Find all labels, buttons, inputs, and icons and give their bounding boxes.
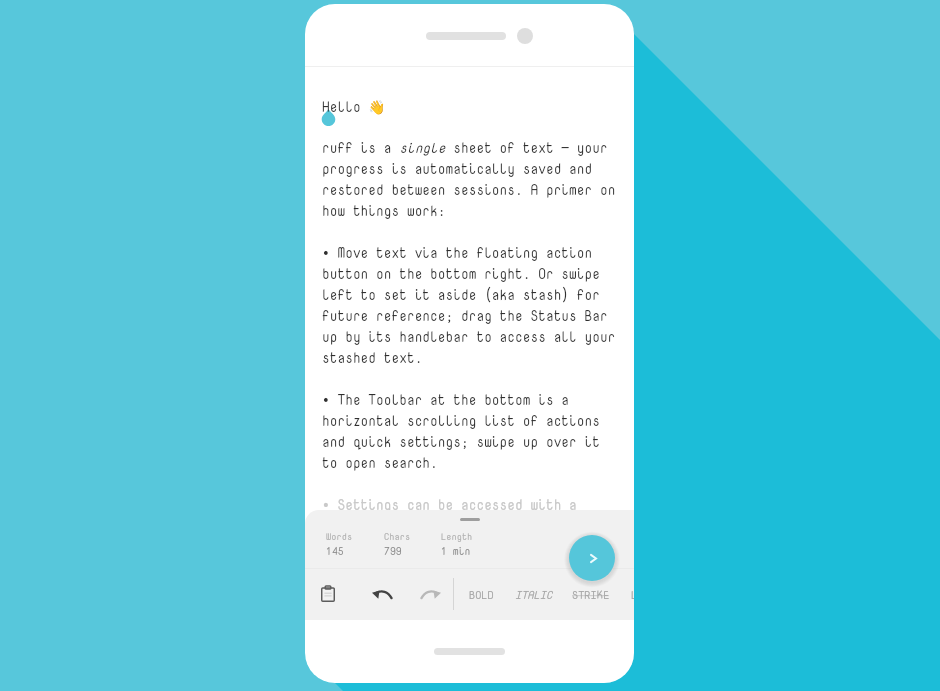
button[interactable]: STRIKE xyxy=(572,577,610,612)
button[interactable]: Redo xyxy=(413,577,447,611)
button[interactable]: Paste xyxy=(311,577,345,611)
staticText: 799 xyxy=(384,544,402,559)
staticText: 145 xyxy=(326,544,344,559)
button[interactable]: L xyxy=(631,577,634,612)
staticText: Words xyxy=(326,530,353,543)
staticText: Hello 👋 ruff is a single sheet of text —… xyxy=(322,97,616,514)
button[interactable]: BOLD xyxy=(469,577,494,612)
button[interactable]: Undo xyxy=(365,577,399,611)
staticText: Length xyxy=(441,530,473,543)
button[interactable]: ITALIC xyxy=(515,577,553,612)
button[interactable]: Move text xyxy=(569,535,615,581)
staticText: STRIKE xyxy=(572,587,610,602)
staticText: BOLD xyxy=(469,587,494,602)
staticText: L xyxy=(631,587,634,602)
staticText: ITALIC xyxy=(515,587,553,602)
staticText: 1 min xyxy=(441,544,471,559)
staticText: Chars xyxy=(384,530,411,543)
